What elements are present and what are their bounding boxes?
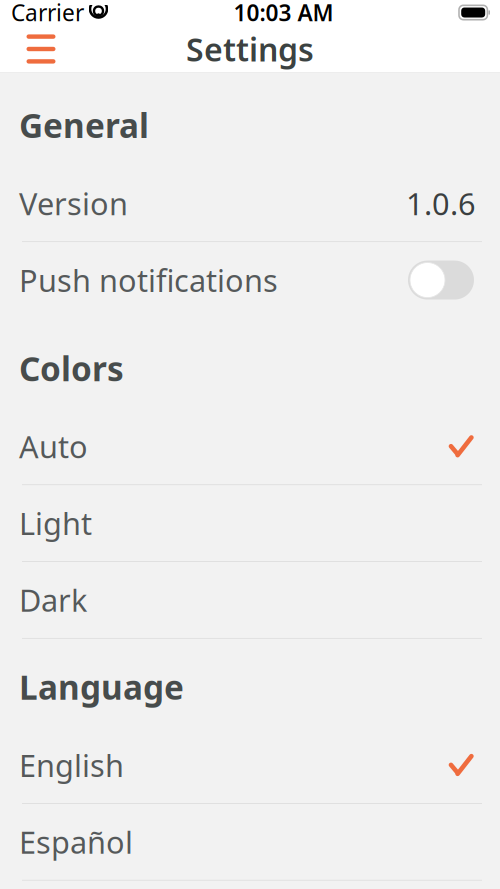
- button[interactable]: Español: [0, 804, 500, 880]
- staticText: 10:03 AM: [233, 0, 333, 27]
- button[interactable]: Version: [0, 165, 500, 241]
- button[interactable]: Light: [0, 485, 500, 561]
- button[interactable]: Push notifications: [0, 242, 500, 318]
- staticText: Español: [19, 821, 133, 862]
- button[interactable]: Menu: [12, 25, 70, 73]
- staticText: Dark: [19, 580, 87, 620]
- staticText: Colors: [19, 346, 124, 390]
- staticText: English: [19, 745, 124, 785]
- button[interactable]: Dark: [0, 562, 500, 638]
- staticText: Settings: [186, 28, 314, 70]
- staticText: General: [19, 103, 149, 147]
- staticText: Carrier: [11, 0, 84, 27]
- button[interactable]: English: [0, 727, 500, 803]
- staticText: Light: [19, 503, 92, 543]
- staticText: Language: [19, 665, 184, 709]
- button[interactable]: Auto: [0, 408, 500, 484]
- staticText: 1.0.6: [406, 183, 476, 224]
- staticText: Push notifications: [19, 260, 278, 300]
- staticText: Auto: [19, 426, 88, 467]
- staticText: Version: [19, 183, 128, 224]
